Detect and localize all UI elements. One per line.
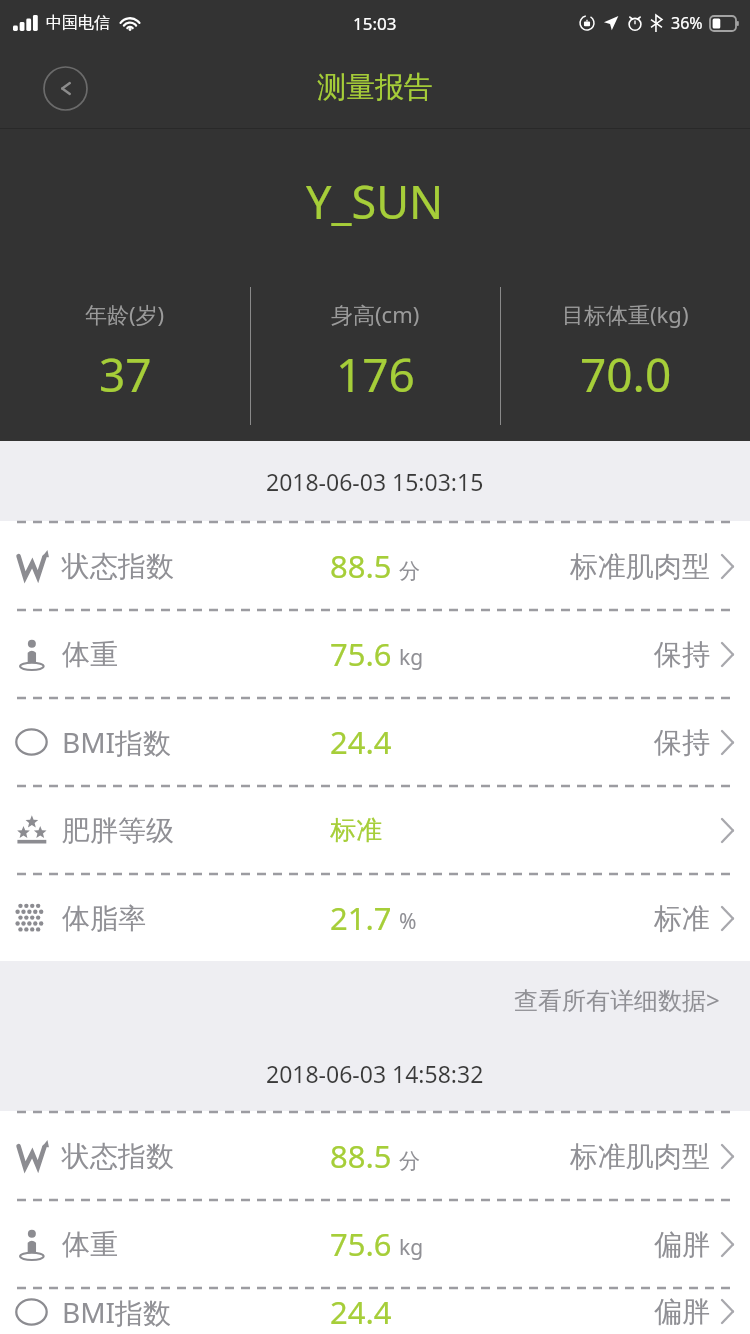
staticText: 肥胖等级 (62, 813, 174, 848)
staticText: 分 (399, 558, 420, 584)
button[interactable]: Back (40, 63, 90, 113)
staticText: BMI指数 (62, 1293, 172, 1331)
staticText: 标准肌肉型 (570, 549, 710, 584)
staticText: 75.6 (330, 633, 392, 675)
staticText: 年龄(岁) (85, 299, 165, 329)
staticText: 查看所有详细数据> (514, 983, 720, 1016)
button[interactable]: 体重 (0, 1201, 750, 1287)
button[interactable]: BMI指数 (0, 1289, 750, 1334)
button[interactable]: 体脂率 (0, 875, 750, 961)
staticText: 状态指数 (62, 549, 174, 584)
button[interactable]: 状态指数 (0, 1113, 750, 1199)
staticText: 中国电信 (46, 13, 110, 33)
button[interactable]: 体重 (0, 611, 750, 697)
staticText: 标准 (654, 901, 710, 936)
button[interactable]: BMI指数 (0, 699, 750, 785)
staticText: 保持 (654, 637, 710, 672)
staticText: 70.0 (580, 343, 672, 406)
staticText: 保持 (654, 725, 710, 760)
staticText: 2018-06-03 14:58:32 (266, 1058, 484, 1089)
button[interactable]: 状态指数 (0, 523, 750, 609)
staticText: 75.6 (330, 1223, 392, 1265)
staticText: 身高(cm) (331, 299, 420, 329)
staticText: kg (399, 643, 424, 672)
staticText: 2018-06-03 15:03:15 (266, 466, 484, 497)
staticText: 分 (399, 1148, 420, 1174)
staticText: 36% (671, 12, 703, 34)
staticText: 体脂率 (62, 901, 146, 936)
staticText: 37 (99, 343, 152, 406)
staticText: 偏胖 (654, 1294, 710, 1329)
staticText: 24.4 (330, 1291, 392, 1333)
staticText: 体重 (62, 637, 118, 672)
staticText: 21.7 (330, 897, 392, 939)
staticText: kg (399, 1233, 424, 1262)
button[interactable]: 肥胖等级 (0, 787, 750, 873)
staticText: 88.5 (330, 545, 392, 587)
staticText: 体重 (62, 1227, 118, 1262)
staticText: BMI指数 (62, 723, 172, 761)
staticText: 测量报告 (317, 69, 433, 106)
staticText: 88.5 (330, 1135, 392, 1177)
staticText: 标准 (330, 814, 382, 847)
staticText: 标准肌肉型 (570, 1139, 710, 1174)
staticText: % (399, 907, 417, 936)
staticText: 176 (336, 343, 415, 406)
staticText: 目标体重(kg) (562, 299, 689, 329)
staticText: 15:03 (353, 12, 397, 35)
staticText: 24.4 (330, 721, 392, 763)
staticText: 偏胖 (654, 1227, 710, 1262)
staticText: 状态指数 (62, 1139, 174, 1174)
staticText: Y_SUN (306, 171, 444, 232)
button[interactable]: 查看所有详细数据> (510, 979, 724, 1020)
